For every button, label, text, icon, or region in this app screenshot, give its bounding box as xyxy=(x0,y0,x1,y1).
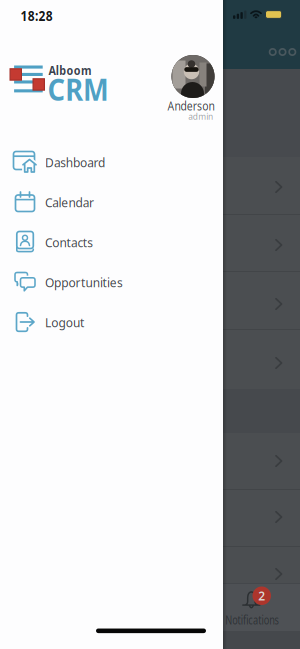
button[interactable]: Dashboard xyxy=(0,142,210,182)
button[interactable]: Contacts xyxy=(0,222,210,262)
staticText: Notifications xyxy=(217,612,287,628)
staticText: 18:28 xyxy=(20,7,56,25)
button[interactable]: More options xyxy=(265,44,299,60)
staticText: admin xyxy=(185,110,213,122)
button[interactable]: List item xyxy=(222,157,300,215)
button[interactable]: List item xyxy=(222,547,300,583)
staticText: 2 xyxy=(258,588,265,604)
button[interactable]: Profile, Anderson, admin xyxy=(134,55,214,126)
button[interactable]: Calendar xyxy=(0,182,210,222)
button[interactable]: List item xyxy=(222,215,300,272)
staticText: Alboom xyxy=(48,62,96,78)
staticText: Logout xyxy=(45,313,89,331)
staticText: Calendar xyxy=(45,193,100,211)
button[interactable]: Logout xyxy=(0,302,210,342)
staticText: CRM xyxy=(47,68,116,109)
button[interactable]: List item xyxy=(222,330,300,389)
button[interactable]: Opportunities xyxy=(0,262,210,302)
staticText: Anderson xyxy=(160,98,214,114)
staticText: Opportunities xyxy=(45,273,131,291)
button[interactable]: List item xyxy=(222,490,300,547)
button[interactable]: List item xyxy=(222,433,300,490)
staticText: Dashboard xyxy=(45,153,112,171)
staticText: Contacts xyxy=(45,233,98,251)
button[interactable]: List item xyxy=(222,272,300,330)
button[interactable]: Notifications xyxy=(222,583,300,631)
